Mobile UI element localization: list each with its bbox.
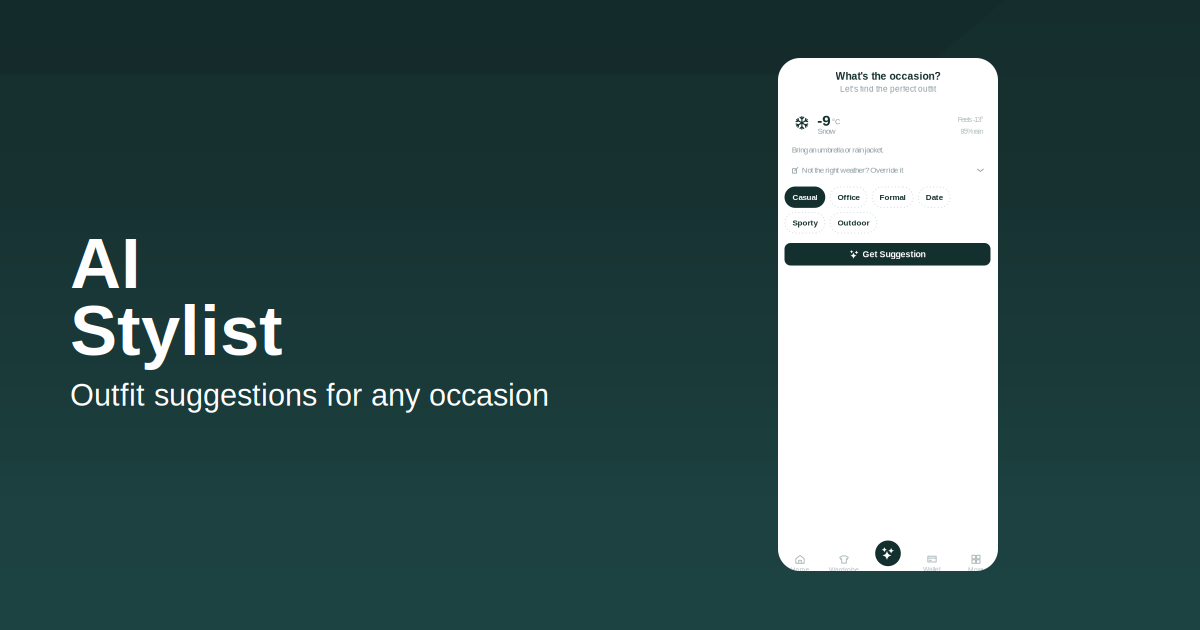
staticText: What's the occasion?	[835, 70, 940, 82]
staticText: AI	[70, 224, 141, 303]
staticText: -9	[817, 112, 830, 129]
staticText: Casual	[792, 193, 817, 202]
button[interactable]: Outdoor	[830, 212, 877, 233]
staticText: Snow	[817, 126, 836, 135]
button[interactable]: Office	[830, 186, 867, 208]
staticText: Let's find the perfect outfit	[840, 84, 936, 93]
button[interactable]: Not the right weather? Override it	[792, 165, 984, 175]
staticText: Feels -13°	[958, 116, 984, 124]
staticText: °C	[832, 117, 840, 126]
button[interactable]: Wardrobe	[822, 554, 866, 580]
staticText: Not the right weather? Override it	[802, 165, 903, 174]
button[interactable]: Wallet	[910, 554, 954, 580]
staticText: More	[968, 566, 984, 573]
staticText: Sporty	[792, 218, 817, 227]
staticText: Office	[837, 193, 859, 202]
button[interactable]: More	[954, 554, 998, 580]
staticText: Home	[790, 566, 809, 573]
button[interactable]: Sporty	[784, 212, 825, 233]
button[interactable]: Formal	[872, 186, 913, 208]
button[interactable]: Get Suggestion	[784, 243, 990, 265]
staticText: Get Suggestion	[862, 249, 925, 259]
button[interactable]: Home	[778, 554, 822, 580]
staticText: Stylist	[70, 291, 283, 370]
staticText: Bring an umbrella or rain jacket.	[792, 145, 884, 154]
staticText: Outfit suggestions for any occasion	[70, 378, 549, 412]
button[interactable]: Get outfit suggestion	[866, 540, 910, 566]
staticText: Wallet	[923, 566, 941, 573]
staticText: 85% rain	[960, 127, 984, 135]
staticText: Wardrobe	[829, 566, 859, 573]
button[interactable]: Date	[918, 186, 951, 208]
button[interactable]: Casual	[784, 186, 825, 208]
staticText: Date	[926, 193, 943, 202]
staticText: Formal	[880, 193, 906, 202]
staticText: Outdoor	[837, 218, 869, 227]
